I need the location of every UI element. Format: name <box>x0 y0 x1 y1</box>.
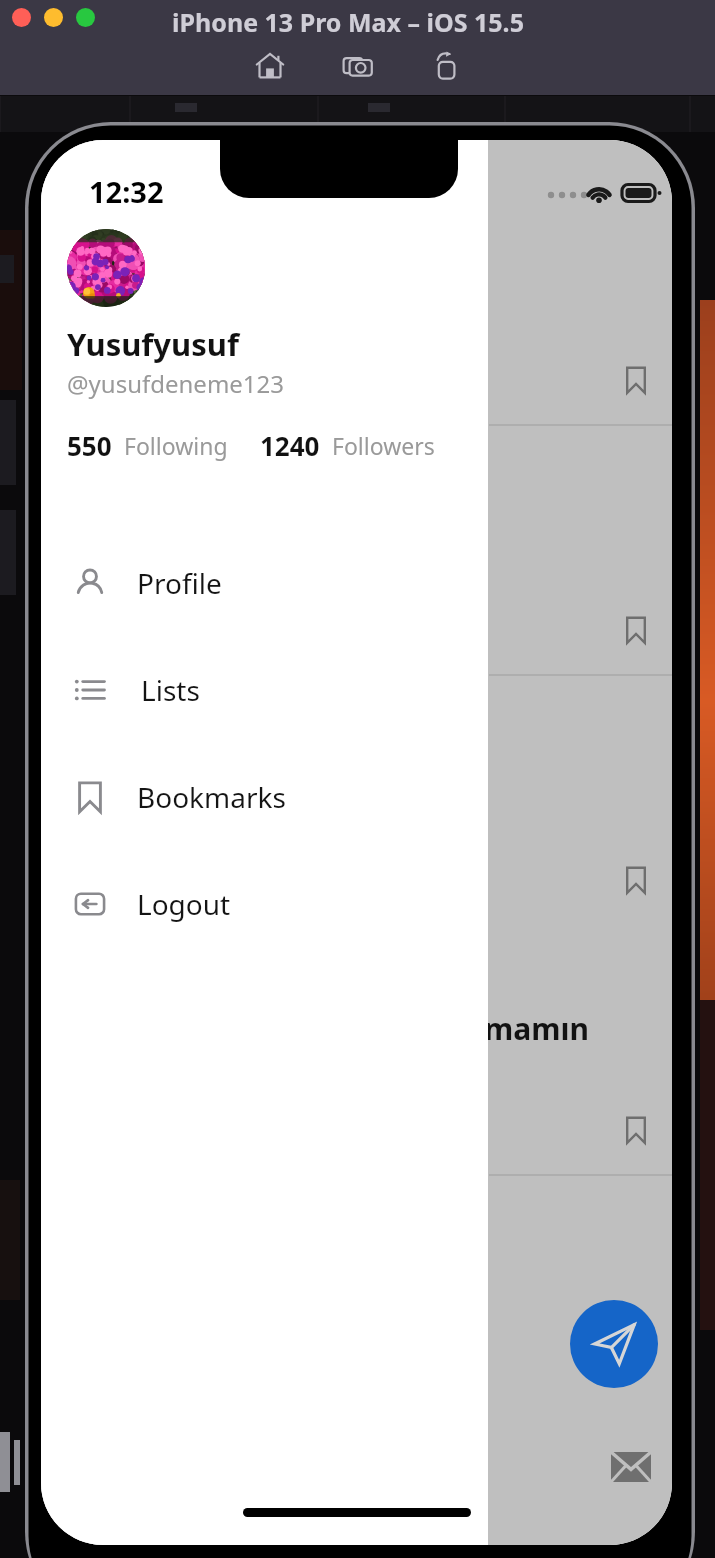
button[interactable]: 550 Following <box>67 428 228 463</box>
button[interactable]: Bookmark <box>618 362 654 398</box>
staticText: 550 <box>67 428 112 463</box>
staticText: @yusufdeneme123 <box>67 367 285 400</box>
button[interactable]: Bookmarks <box>41 743 488 850</box>
staticText: 1240 <box>260 428 320 463</box>
button[interactable]: Maximize <box>76 8 95 27</box>
staticText: Yusufyusuf <box>67 323 239 365</box>
staticText: amamın <box>466 1008 589 1049</box>
button[interactable]: Screenshot <box>339 47 377 85</box>
staticText: Logout <box>137 885 231 923</box>
button[interactable]: New message <box>570 1300 658 1388</box>
button[interactable]: Messages <box>604 1440 658 1494</box>
button[interactable]: Bookmark <box>618 612 654 648</box>
button[interactable]: Home <box>251 47 289 85</box>
button[interactable]: Minimize <box>44 8 63 27</box>
button[interactable]: Profile <box>41 529 488 636</box>
button[interactable]: Close <box>12 8 31 27</box>
staticText: Lists <box>141 671 200 709</box>
button[interactable]: Logout <box>41 850 488 957</box>
staticText: 12:32 <box>89 172 164 211</box>
button[interactable]: 1240 Followers <box>260 428 435 463</box>
button[interactable]: Bookmark <box>618 862 654 898</box>
button[interactable]: Rotate <box>427 47 465 85</box>
staticText: iPhone 13 Pro Max – iOS 15.5 <box>172 5 524 39</box>
button[interactable]: Lists <box>41 636 488 743</box>
staticText: Followers <box>332 430 435 461</box>
button[interactable]: Bookmark <box>618 1112 654 1148</box>
staticText: Following <box>124 430 228 461</box>
staticText: Bookmarks <box>137 778 286 816</box>
staticText: Profile <box>137 564 222 602</box>
